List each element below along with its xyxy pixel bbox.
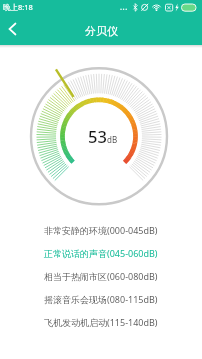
button[interactable]	[0, 17, 30, 45]
staticText: 相当于热闹市区(060-080dB)	[44, 270, 158, 282]
staticText: 飞机发动机启动(115-140dB)	[44, 316, 158, 328]
staticText: 非常安静的环境(000-045dB)	[44, 224, 158, 236]
staticText: dB	[107, 134, 118, 145]
button[interactable]: 摇滚音乐会现场(080-115dB)	[0, 287, 202, 310]
button[interactable]: 正常说话的声音(045-060dB)	[0, 241, 202, 264]
staticText: 53	[88, 125, 107, 147]
staticText: 晚上8:18	[3, 2, 33, 12]
staticText: 摇滚音乐会现场(080-115dB)	[44, 293, 158, 305]
staticText: 分贝仪	[85, 24, 118, 38]
button[interactable]: 相当于热闹市区(060-080dB)	[0, 264, 202, 287]
staticText: 正常说话的声音(045-060dB)	[44, 247, 158, 259]
button[interactable]: 非常安静的环境(000-045dB)	[0, 218, 202, 241]
button[interactable]: 飞机发动机启动(115-140dB)	[0, 310, 202, 333]
